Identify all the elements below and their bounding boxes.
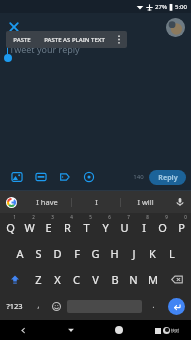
button[interactable]: Add location <box>77 165 101 189</box>
staticText: J <box>132 246 136 261</box>
button[interactable]: 2 <box>20 213 39 240</box>
staticText: 5 <box>89 214 92 220</box>
staticText: , <box>37 298 40 310</box>
button[interactable]: Add photo <box>5 165 29 189</box>
staticText: F <box>74 246 80 261</box>
button[interactable]: Voice input <box>169 197 191 207</box>
button[interactable]: ?123 <box>0 292 29 320</box>
button[interactable]: PASTE AS PLAIN TEXT <box>38 31 111 48</box>
button[interactable]: 4 <box>58 213 77 240</box>
button[interactable]: , <box>29 292 47 320</box>
button[interactable]: Reply <box>149 170 186 185</box>
button[interactable]: F <box>67 240 86 266</box>
staticText: I will <box>137 197 154 207</box>
button[interactable]: C <box>67 266 86 292</box>
button[interactable]: I have <box>22 191 71 213</box>
staticText: B <box>111 272 119 287</box>
staticText: R <box>64 220 71 235</box>
staticText: PASTE <box>13 36 31 44</box>
staticText: 3 <box>51 214 54 220</box>
button[interactable]: B <box>105 266 124 292</box>
staticText: 9 <box>165 214 168 220</box>
staticText: V <box>92 272 99 287</box>
staticText: 4 <box>70 214 73 220</box>
staticText: 8 <box>146 214 149 220</box>
staticText: I <box>142 220 146 235</box>
staticText: 1 <box>13 214 16 220</box>
staticText: I <box>95 197 98 207</box>
button[interactable]: Hide keyboard <box>47 320 95 340</box>
staticText: G <box>91 246 100 261</box>
staticText: 6 <box>108 214 111 220</box>
button[interactable]: More options <box>111 31 127 48</box>
staticText: ?123 <box>6 301 23 311</box>
button[interactable]: Shift <box>0 266 29 292</box>
button[interactable]: 1 <box>0 213 20 240</box>
button[interactable]: 9 <box>153 213 172 240</box>
button[interactable]: Google <box>0 197 22 208</box>
staticText: 5:00 <box>175 3 187 11</box>
staticText: 快对 <box>171 328 179 333</box>
button[interactable]: X <box>48 266 67 292</box>
staticText: T <box>83 220 90 235</box>
button[interactable]: A <box>10 240 29 266</box>
button[interactable]: L <box>162 240 181 266</box>
button[interactable]: H <box>105 240 124 266</box>
staticText: W <box>24 220 35 235</box>
button[interactable]: G <box>86 240 105 266</box>
staticText: 7 <box>127 214 130 220</box>
button[interactable]: K <box>143 240 162 266</box>
button[interactable]: Back <box>0 320 47 340</box>
button[interactable]: 7 <box>115 213 134 240</box>
button[interactable]: Add GIF <box>29 165 53 189</box>
button[interactable]: N <box>124 266 143 292</box>
staticText: S <box>35 246 42 261</box>
staticText: 2 <box>32 214 35 220</box>
button[interactable]: Enter <box>168 298 185 315</box>
button[interactable]: 5 <box>77 213 96 240</box>
staticText: . <box>152 298 155 310</box>
staticText: Reply <box>158 173 178 183</box>
staticText: 140 <box>133 173 144 181</box>
button[interactable]: Close <box>6 19 22 35</box>
staticText: O <box>158 220 167 235</box>
button[interactable]: Z <box>29 266 48 292</box>
staticText: U <box>120 220 129 235</box>
staticText: X <box>54 272 61 287</box>
staticText: 27% <box>155 3 167 11</box>
staticText: P <box>178 220 185 235</box>
button[interactable]: PASTE <box>6 31 38 48</box>
staticText: K <box>149 246 156 261</box>
button[interactable]: 8 <box>134 213 153 240</box>
staticText: H <box>110 246 119 261</box>
button[interactable]: J <box>124 240 143 266</box>
button[interactable]: D <box>48 240 67 266</box>
staticText: Q <box>6 220 15 235</box>
staticText: Y <box>102 220 109 235</box>
button[interactable]: 0 <box>172 213 191 240</box>
button[interactable]: Add poll <box>53 165 77 189</box>
button[interactable]: 3 <box>39 213 58 240</box>
button[interactable]: Home <box>95 320 143 340</box>
button[interactable]: M <box>143 266 162 292</box>
staticText: L <box>169 246 175 261</box>
staticText: 0 <box>184 214 187 220</box>
button[interactable]: I will <box>121 191 169 213</box>
staticText: Tweet your reply <box>9 43 80 55</box>
staticText: N <box>129 272 138 287</box>
staticText: E <box>45 220 52 235</box>
button[interactable]: Backspace <box>162 266 191 292</box>
button[interactable]: Emoji <box>47 292 65 320</box>
button[interactable]: S <box>29 240 48 266</box>
staticText: I have <box>36 197 58 207</box>
staticText: A <box>16 246 24 261</box>
button[interactable]: Profile <box>166 18 185 37</box>
button[interactable]: V <box>86 266 105 292</box>
staticText: Z <box>35 272 42 287</box>
button[interactable]: . <box>144 292 162 320</box>
button[interactable]: 6 <box>96 213 115 240</box>
staticText: M <box>148 272 158 287</box>
button[interactable]: I <box>72 191 120 213</box>
